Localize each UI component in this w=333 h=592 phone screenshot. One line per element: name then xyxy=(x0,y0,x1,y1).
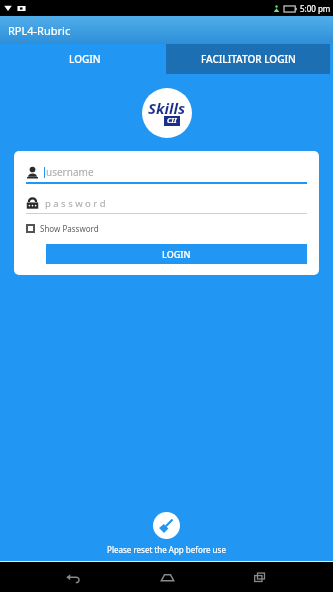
button[interactable]: LOGIN xyxy=(3,44,166,74)
button[interactable]: Back xyxy=(60,564,86,590)
staticText: 5:00 pm xyxy=(300,3,331,14)
staticText: CII xyxy=(167,116,177,126)
staticText: Show Password xyxy=(40,223,99,234)
staticText: username xyxy=(46,165,94,179)
staticText: LOGIN xyxy=(69,52,101,66)
button[interactable]: Home xyxy=(154,564,180,590)
button[interactable]: Reset the App xyxy=(153,512,180,539)
staticText: RPL4-Rubric xyxy=(8,23,71,38)
staticText: p a s s w o r d xyxy=(45,197,106,210)
staticText: Skills xyxy=(148,98,186,118)
button[interactable]: FACILITATOR LOGIN xyxy=(166,44,330,74)
button[interactable]: Recents xyxy=(247,564,273,590)
staticText: FACILITATOR LOGIN xyxy=(201,52,296,66)
button[interactable]: p a s s w o r d xyxy=(26,193,307,213)
staticText: LOGIN xyxy=(162,248,191,260)
button[interactable]: Show Password xyxy=(26,223,99,234)
button[interactable]: username xyxy=(26,162,307,182)
button[interactable]: LOGIN xyxy=(46,244,307,264)
staticText: Please reset the App before use xyxy=(107,544,226,555)
